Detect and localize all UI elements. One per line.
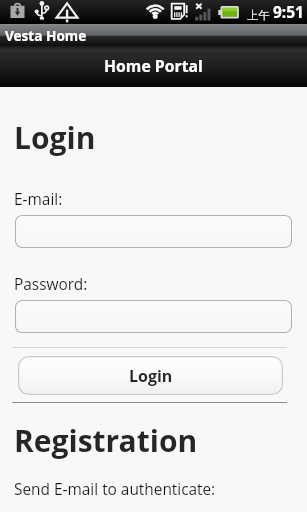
staticText: Login <box>129 365 173 387</box>
staticText: Send E-mail to authenticate: <box>14 479 216 500</box>
staticText: 9:51 <box>273 1 304 22</box>
button[interactable] <box>15 215 292 248</box>
staticText: E-mail: <box>14 189 63 210</box>
button[interactable] <box>15 300 292 333</box>
staticText: Password: <box>14 274 88 295</box>
staticText: Vesta Home <box>5 26 87 45</box>
staticText: Registration <box>14 420 198 461</box>
staticText: Login <box>14 117 96 158</box>
staticText: Home Portal <box>104 55 203 77</box>
button[interactable]: Login <box>18 356 283 395</box>
staticText: 上午 <box>247 8 270 22</box>
